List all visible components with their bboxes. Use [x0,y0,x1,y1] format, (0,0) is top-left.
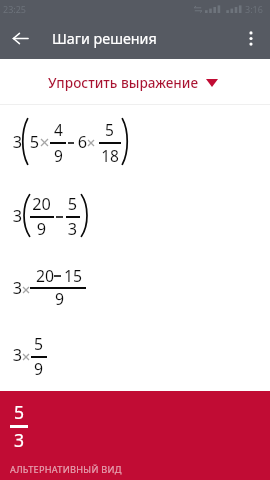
staticText: 15 [52,265,94,287]
staticText: 5 [2,400,36,424]
staticText: 5 [93,119,126,140]
staticText: 9 [22,358,55,380]
staticText: 9 [42,145,75,166]
staticText: 18 [89,145,131,166]
staticText: 20 [24,265,66,287]
staticText: 9 [25,218,58,240]
staticText: 20 [20,193,63,215]
staticText: 5 [22,333,55,355]
staticText: 3 [2,428,36,452]
staticText: 9 [43,288,76,310]
button[interactable]: АЛЬТЕРНАТИВНЫЙ ВИД [0,463,270,476]
staticText: 5 [18,131,51,153]
staticText: 4 [42,119,75,140]
staticText: 3 [1,277,34,299]
staticText: 3 [1,344,34,366]
button[interactable]: Упростить выражение [0,67,266,98]
staticText: 6 [66,131,99,153]
button[interactable]: More options [235,22,267,54]
staticText: 23:25 [3,3,27,15]
staticText: 3 [1,131,34,153]
staticText: 3 [56,218,89,240]
staticText: 3:16 [245,3,263,15]
button[interactable]: Back [3,21,37,55]
staticText: 3 [1,205,34,227]
staticText: Упростить выражение [48,73,199,92]
staticText: Шаги решения [52,29,157,48]
staticText: 5 [56,193,89,215]
